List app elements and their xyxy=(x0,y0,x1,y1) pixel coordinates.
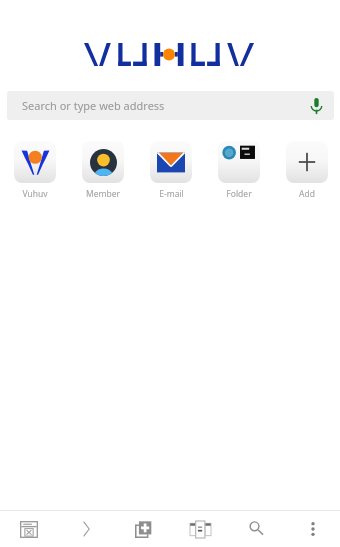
button[interactable]: Close tab xyxy=(11,511,47,547)
staticText: Vuhuv xyxy=(22,188,48,200)
staticText: Search or type web address xyxy=(22,98,165,113)
button[interactable]: New tab xyxy=(125,511,161,547)
button[interactable]: E-mail xyxy=(150,141,192,200)
button[interactable]: Folder xyxy=(218,141,260,200)
staticText: Folder xyxy=(226,188,252,200)
button[interactable]: Vuhuv xyxy=(14,141,56,200)
button[interactable]: Forward xyxy=(68,511,104,547)
button[interactable]: Member xyxy=(82,141,124,200)
button[interactable]: Add xyxy=(286,141,328,200)
staticText: Add xyxy=(299,188,315,200)
button[interactable]: More options xyxy=(295,511,331,547)
button[interactable]: Search or type web address xyxy=(7,91,334,120)
staticText: Member xyxy=(86,188,120,200)
button[interactable]: Search xyxy=(239,511,275,547)
staticText: E-mail xyxy=(159,188,184,200)
button[interactable]: Desktop site xyxy=(182,511,218,547)
